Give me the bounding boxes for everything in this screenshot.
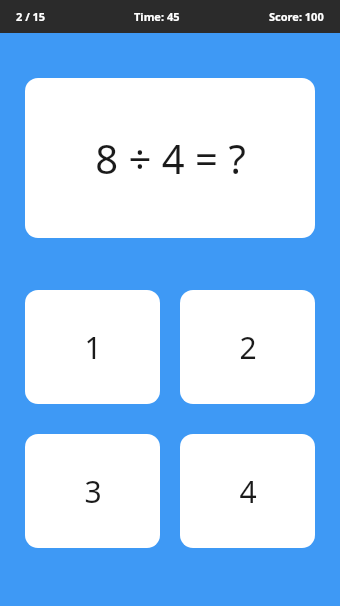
button[interactable]: 1	[25, 290, 160, 404]
staticText: 3	[84, 471, 102, 512]
staticText: Score: 100	[269, 9, 324, 24]
staticText: 1	[84, 327, 102, 368]
staticText: 4	[239, 471, 257, 512]
button[interactable]: 3	[25, 434, 160, 548]
staticText: Time: 45	[134, 9, 180, 24]
button[interactable]: 2	[180, 290, 315, 404]
staticText: 2	[239, 327, 257, 368]
button[interactable]: 4	[180, 434, 315, 548]
staticText: 8 ÷ 4 = ?	[95, 131, 246, 185]
staticText: 2 / 15	[16, 9, 46, 24]
